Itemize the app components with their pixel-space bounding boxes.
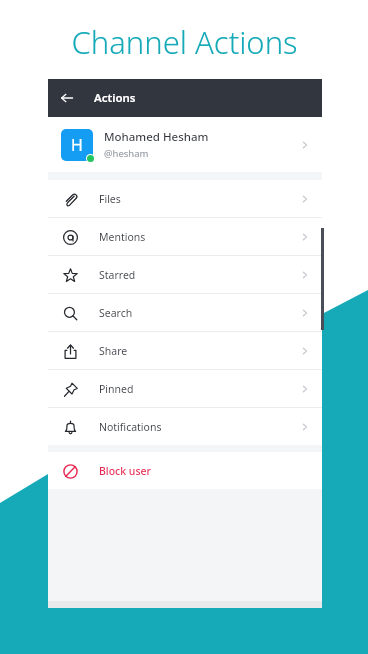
button[interactable]: Block user [48, 452, 322, 489]
staticText: Share [99, 344, 300, 358]
button[interactable]: Pinned [48, 370, 322, 407]
staticText: H [71, 134, 83, 156]
staticText: Mohamed Hesham [104, 129, 209, 145]
staticText: @hesham [104, 147, 149, 160]
staticText: Channel Actions [71, 21, 298, 63]
staticText: Search [99, 306, 300, 320]
button[interactable]: Notifications [48, 408, 322, 445]
staticText: Pinned [99, 382, 300, 396]
button[interactable]: Mentions [48, 218, 322, 255]
staticText: Files [99, 192, 300, 206]
staticText: Notifications [99, 420, 300, 434]
button[interactable]: H [48, 117, 322, 172]
staticText: Block user [99, 464, 152, 478]
button[interactable]: Back [48, 79, 86, 117]
button[interactable]: Starred [48, 256, 322, 293]
button[interactable]: Files [48, 180, 322, 217]
staticText: Starred [99, 268, 300, 282]
staticText: Actions [94, 90, 136, 106]
button[interactable]: Share [48, 332, 322, 369]
staticText: Mentions [99, 230, 300, 244]
button[interactable]: Search [48, 294, 322, 331]
